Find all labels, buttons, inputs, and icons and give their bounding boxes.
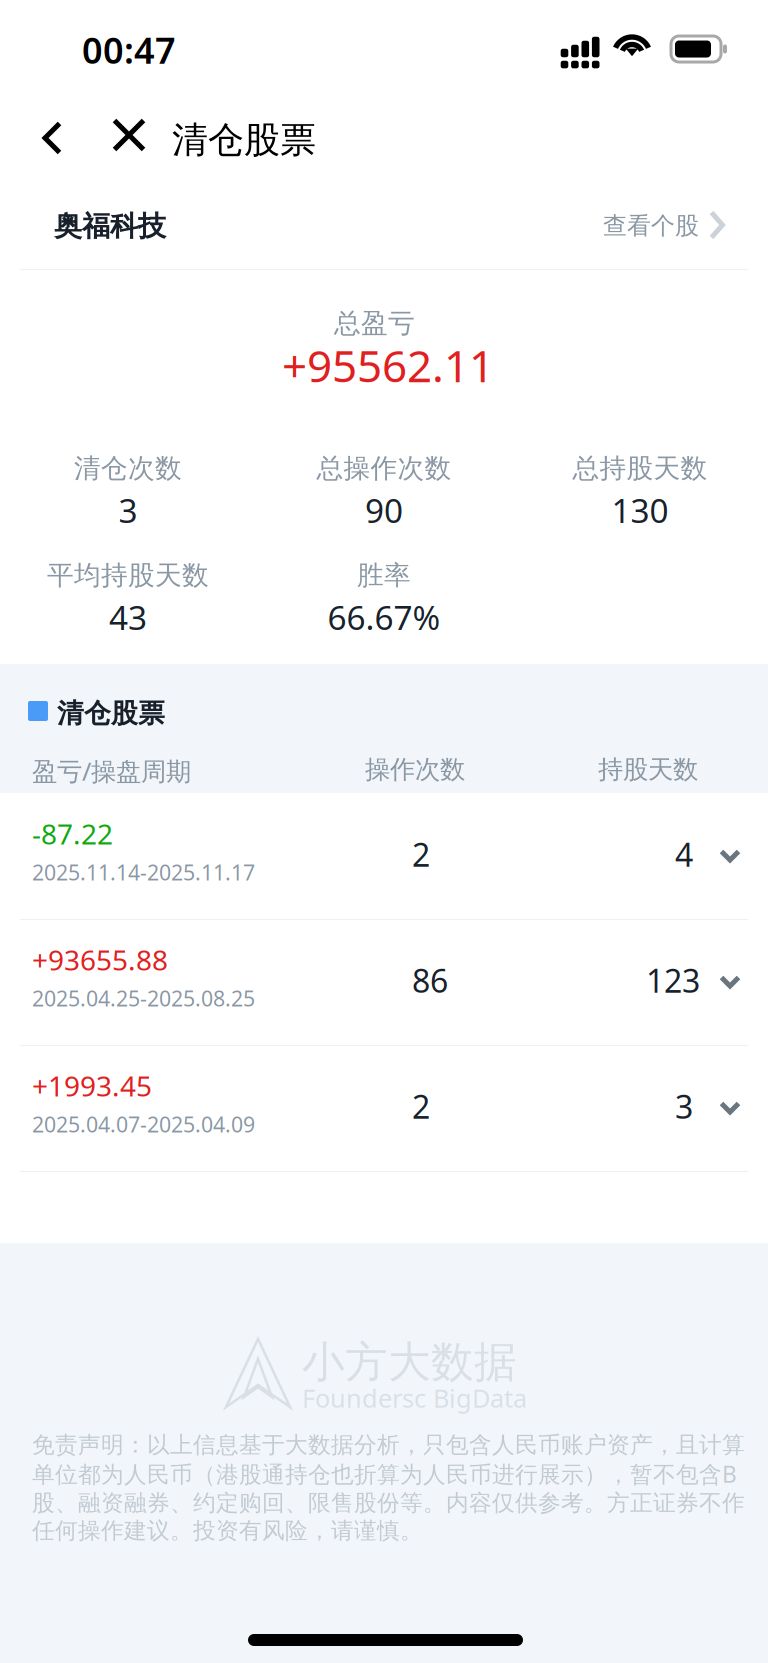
staticText: Foundersc BigData [302,1381,527,1415]
staticText: 2 [412,833,430,875]
button[interactable]: 奥福科技 [0,184,768,268]
staticText: 43 [109,595,147,639]
staticText: 查看个股 [603,211,699,240]
staticText: 2025.04.25-2025.08.25 [32,984,255,1012]
staticText: 持股天数 [598,754,698,785]
staticText: 总盈亏 [334,307,415,340]
button[interactable]: +93655.88 [0,919,768,1045]
staticText: 3 [118,488,137,532]
staticText: 66.67% [327,595,440,639]
staticText: 总持股天数 [572,452,707,485]
staticText: 2 [412,1085,430,1127]
staticText: -87.22 [32,815,113,852]
staticText: 总操作次数 [316,452,451,485]
button[interactable]: +1993.45 [0,1045,768,1171]
staticText: 清仓股票 [57,697,165,730]
staticText: 免责声明：以上信息基于大数据分析，只包含人民币账户资产，且计算 单位都为人民币（… [32,1431,745,1545]
staticText: 4 [675,833,693,875]
staticText: 清仓次数 [74,452,182,485]
button[interactable]: 关闭 [90,102,162,174]
staticText: 130 [611,488,668,532]
staticText: 2025.04.07-2025.04.09 [32,1110,255,1138]
button[interactable]: 返回 [16,102,88,174]
button[interactable]: -87.22 [0,793,768,919]
staticText: 盈亏/操盘周期 [32,754,191,788]
staticText: 86 [412,959,448,1001]
staticText: 123 [646,959,700,1001]
staticText: 平均持股天数 [47,559,209,592]
staticText: 3 [675,1085,693,1127]
staticText: 2025.11.14-2025.11.17 [32,858,255,886]
staticText: 奥福科技 [54,209,166,243]
staticText: 小方大数据 [302,1336,517,1388]
staticText: 00:47 [82,26,176,74]
staticText: 清仓股票 [172,118,316,162]
staticText: +1993.45 [32,1067,152,1104]
staticText: 操作次数 [365,754,465,785]
staticText: +95562.11 [282,336,494,394]
staticText: +93655.88 [32,941,168,978]
staticText: 90 [365,488,403,532]
staticText: 胜率 [357,559,411,592]
